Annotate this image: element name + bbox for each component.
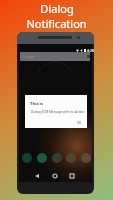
button[interactable]: Camera (52, 153, 62, 163)
staticText: Dialog SCM Message with no Action (31, 110, 85, 114)
staticText: Notification (26, 16, 87, 31)
staticText: 4:20 (87, 48, 94, 53)
staticText: Google (23, 54, 35, 59)
button[interactable]: Home (50, 171, 60, 181)
button[interactable]: Back (32, 171, 42, 181)
staticText: Dialog (40, 1, 74, 16)
button[interactable]: Recents (67, 171, 77, 181)
button[interactable]: Google Search (20, 52, 90, 61)
button[interactable]: Messages (37, 153, 47, 163)
button[interactable]: OK (77, 121, 82, 125)
staticText: This is (30, 101, 43, 107)
button[interactable]: Photos (66, 153, 76, 163)
button[interactable]: Phone (22, 153, 32, 163)
button[interactable]: This is (25, 95, 87, 128)
button[interactable]: Play Store (81, 153, 91, 163)
